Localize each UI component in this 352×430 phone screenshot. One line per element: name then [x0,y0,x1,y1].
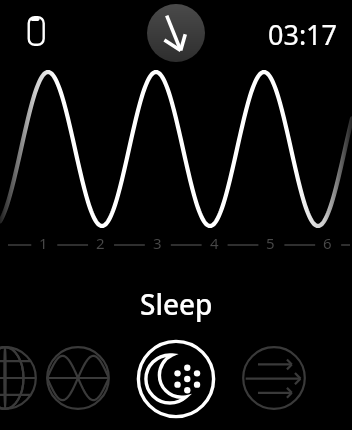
staticText: Sleep [140,285,213,323]
button[interactable]: Wind [241,345,307,411]
button[interactable]: Phone connected [24,16,46,46]
staticText: 2 [96,233,105,253]
button[interactable]: Sleep [135,338,217,420]
button[interactable]: UV index [0,345,38,411]
staticText: 5 [266,233,275,253]
staticText: 1 [39,233,48,253]
staticText: 4 [210,233,219,253]
staticText: 3 [153,233,162,253]
staticText: 03:17 [268,16,338,53]
button[interactable]: Tides [45,345,111,411]
button[interactable]: Scroll down [147,4,205,62]
staticText: 6 [323,233,332,253]
